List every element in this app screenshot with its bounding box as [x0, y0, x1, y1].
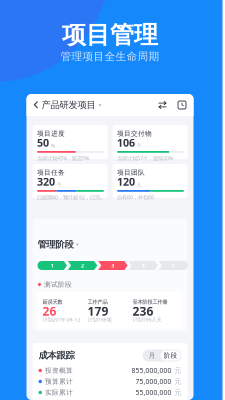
button[interactable]: 月 — [143, 350, 160, 360]
staticText: 测试阶段 — [44, 280, 72, 289]
staticText: 个 — [136, 142, 141, 149]
staticText: 当前计划57个，提前20% — [117, 155, 173, 162]
staticText: 元 — [174, 388, 181, 397]
staticText: 管理阶段 — [37, 239, 73, 250]
staticText: 项目进度 — [37, 129, 65, 138]
staticText: 月 — [148, 351, 155, 360]
staticText: 人 — [136, 181, 141, 188]
staticText: 实际累计 — [45, 388, 73, 397]
staticText: 320 — [37, 174, 55, 189]
staticText: 26 — [42, 303, 56, 319]
staticText: 自有60，外包60 — [117, 194, 154, 201]
staticText: 3 — [111, 262, 114, 269]
staticText: % — [50, 142, 54, 149]
button[interactable]: 产品研发项目 — [33, 95, 101, 115]
staticText: 236 — [132, 303, 153, 319]
staticText: 50 — [37, 135, 49, 150]
staticText: 855,000,000 — [131, 366, 171, 375]
staticText: 预算累计 — [45, 377, 73, 386]
staticText: 工作产品 — [87, 299, 107, 305]
staticText: 当前计划45%，延迟5% — [37, 155, 89, 162]
staticText: 已超期80，预计超 92，已完成180 — [37, 194, 103, 201]
staticText: 55,000,000 — [135, 388, 171, 397]
staticText: 元 — [174, 366, 181, 375]
staticText: 项目管理 — [62, 20, 158, 50]
button[interactable]: History — [177, 97, 186, 112]
staticText: 至本阶段工作量 — [132, 299, 167, 305]
staticText: 2 — [81, 262, 84, 269]
staticText: 项目交付物 — [117, 129, 152, 138]
staticText: 项目任务 — [37, 168, 65, 177]
staticText: 管理项目全生命周期 — [60, 50, 159, 63]
button[interactable]: Switch view — [158, 97, 167, 112]
staticText: 元 — [174, 377, 181, 386]
staticText: 4 — [142, 262, 145, 269]
staticText: 120 — [117, 174, 135, 189]
staticText: 1 — [51, 262, 54, 269]
staticText: 项目团队 — [117, 168, 145, 177]
staticText: ▾ — [98, 102, 101, 108]
button[interactable]: 阶段 — [160, 350, 180, 360]
staticText: 投资概算 — [45, 366, 73, 375]
staticText: 阶段 — [163, 351, 177, 360]
staticText: 179 — [87, 303, 108, 319]
staticText: 5 — [172, 262, 175, 269]
staticText: 个 — [56, 181, 61, 188]
staticText: 延误天数 — [42, 299, 62, 305]
staticText: 计划196人天 — [132, 316, 161, 323]
staticText: 75,000,000 — [135, 377, 171, 386]
staticText: 产品研发项目 — [41, 99, 95, 111]
staticText: 计划198项 — [87, 316, 111, 323]
staticText: 106 — [117, 135, 135, 150]
staticText: ▾ — [76, 241, 79, 248]
staticText: 成本跟踪 — [38, 350, 74, 361]
staticText: 计划2019-04-13 — [42, 316, 80, 323]
